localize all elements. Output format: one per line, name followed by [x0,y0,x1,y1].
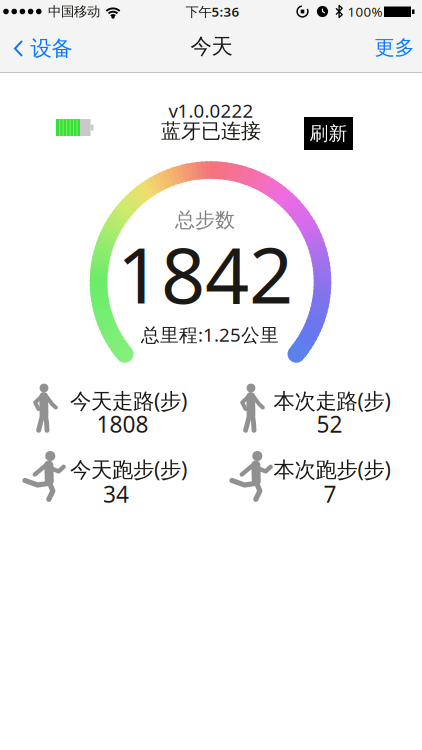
staticText: 52 [316,409,342,439]
staticText: 设备 [30,35,72,62]
staticText: 100% [347,3,382,20]
staticText: 刷新 [309,122,347,145]
staticText: 总里程:1.25公里 [141,322,279,347]
staticText: 更多 [374,35,414,60]
staticText: 下午5:36 [185,3,239,20]
staticText: 总步数 [175,208,235,232]
staticText: 本次跑步(步) [273,455,390,483]
button[interactable]: 设备 [13,35,72,62]
staticText: 今天 [190,33,232,60]
staticText: 本次走路(步) [273,386,390,415]
button[interactable]: 更多 [374,35,414,60]
staticText: 蓝牙已连接 [161,119,261,143]
staticText: 今天走路(步) [70,386,187,415]
staticText: 中国移动 [48,3,100,20]
staticText: 1808 [96,409,148,439]
staticText: v1.0.0222 [168,98,253,123]
staticText: 今天跑步(步) [70,455,187,483]
staticText: 1842 [117,222,293,325]
staticText: 34 [103,479,129,509]
button[interactable]: 刷新 [304,117,353,150]
staticText: 7 [323,479,336,509]
